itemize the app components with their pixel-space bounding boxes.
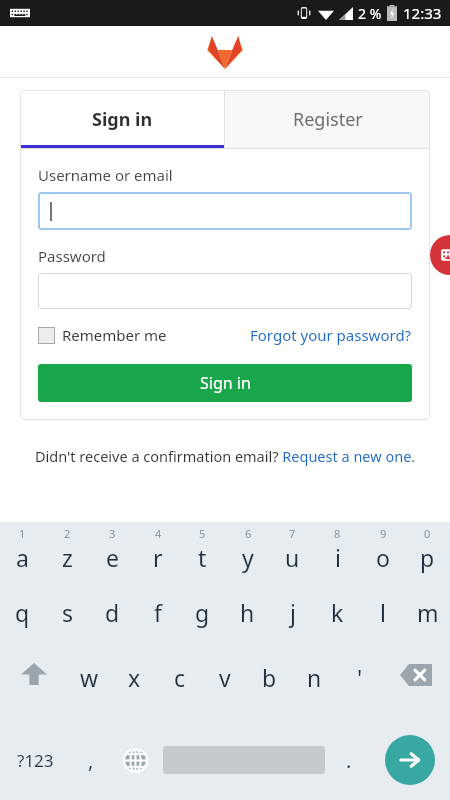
button[interactable]: n — [292, 655, 337, 720]
button[interactable]: 8 — [315, 522, 360, 590]
staticText: y — [242, 542, 254, 573]
button[interactable]: ' — [337, 655, 382, 720]
button[interactable]: m — [405, 590, 450, 655]
staticText: Username or email — [38, 165, 173, 185]
staticText: , — [88, 747, 94, 774]
staticText: 12:33 — [403, 3, 442, 23]
button[interactable]: g — [180, 590, 225, 655]
staticText: Sign in — [200, 372, 251, 394]
button[interactable]: 0 — [405, 522, 450, 590]
staticText: Remember me — [62, 325, 167, 345]
button[interactable]: k — [315, 590, 360, 655]
staticText: u — [285, 542, 300, 573]
staticText: j — [290, 597, 296, 628]
staticText: Didn't receive a confirmation email? Req… — [35, 446, 416, 466]
staticText: ' — [357, 662, 363, 693]
button[interactable]: b — [247, 655, 292, 720]
staticText: 8 — [334, 526, 341, 541]
staticText: l — [380, 597, 386, 628]
staticText: t — [198, 542, 207, 573]
button[interactable]: , — [70, 720, 112, 800]
staticText: o — [376, 542, 390, 573]
button[interactable]: v — [202, 655, 247, 720]
staticText: a — [16, 542, 29, 573]
button[interactable]: Space — [159, 720, 328, 800]
button[interactable]: 3 — [90, 522, 135, 590]
button[interactable]: x — [112, 655, 157, 720]
button[interactable]: Forgot your password? — [250, 325, 412, 345]
staticText: h — [240, 597, 255, 628]
staticText: Password — [38, 246, 106, 266]
staticText: z — [62, 542, 73, 573]
staticText: p — [420, 542, 435, 573]
button[interactable]: 9 — [360, 522, 405, 590]
button[interactable]: 5 — [180, 522, 225, 590]
button[interactable]: d — [90, 590, 135, 655]
button[interactable]: . — [328, 720, 370, 800]
button[interactable]: c — [157, 655, 202, 720]
button[interactable]: Change language — [112, 720, 159, 800]
staticText: k — [331, 597, 344, 628]
button[interactable]: f — [135, 590, 180, 655]
button[interactable]: s — [45, 590, 90, 655]
button[interactable]: Enter — [385, 735, 435, 785]
button[interactable]: h — [225, 590, 270, 655]
button[interactable]: 1 — [0, 522, 45, 590]
button[interactable]: w — [67, 655, 112, 720]
button[interactable]: j — [270, 590, 315, 655]
staticText: r — [153, 542, 163, 573]
staticText: 9 — [380, 526, 387, 541]
staticText: n — [307, 662, 322, 693]
staticText: x — [128, 662, 141, 693]
staticText: v — [219, 662, 231, 693]
staticText: 1 — [19, 526, 26, 541]
button[interactable]: Sign in — [38, 364, 412, 402]
staticText: . — [346, 747, 352, 774]
staticText: Forgot your password? — [250, 325, 412, 345]
staticText: 0 — [424, 526, 431, 541]
staticText: 4 — [155, 526, 162, 541]
button[interactable]: Keyboard switcher — [430, 235, 450, 275]
staticText: c — [174, 662, 186, 693]
button[interactable]: q — [0, 590, 45, 655]
button[interactable]: 2 — [45, 522, 90, 590]
button[interactable]: 4 — [135, 522, 180, 590]
staticText: 2 — [64, 526, 71, 541]
button[interactable]: ?123 — [0, 720, 70, 800]
staticText: q — [15, 597, 30, 628]
staticText: Register — [293, 107, 363, 132]
staticText: g — [195, 597, 210, 628]
button[interactable]: l — [360, 590, 405, 655]
button[interactable]: Backspace — [382, 655, 450, 720]
staticText: m — [417, 597, 439, 628]
staticText: f — [154, 597, 162, 628]
staticText: w — [80, 662, 99, 693]
staticText: e — [106, 542, 119, 573]
button[interactable]: Sign in — [20, 90, 224, 148]
button[interactable] — [38, 192, 412, 230]
staticText: 6 — [245, 526, 252, 541]
staticText: ?123 — [17, 749, 54, 772]
staticText: i — [335, 542, 341, 573]
staticText: 7 — [289, 526, 296, 541]
button[interactable] — [38, 273, 412, 309]
button[interactable]: Remember me — [38, 325, 167, 345]
staticText: 2 % — [358, 4, 382, 23]
button[interactable]: Register — [225, 90, 430, 148]
button[interactable]: 7 — [270, 522, 315, 590]
staticText: 5 — [199, 526, 206, 541]
staticText: s — [62, 597, 74, 628]
staticText: d — [105, 597, 120, 628]
staticText: 3 — [109, 526, 116, 541]
button[interactable]: 6 — [225, 522, 270, 590]
staticText: b — [262, 662, 277, 693]
button[interactable]: Shift — [0, 655, 67, 720]
staticText: Sign in — [92, 107, 153, 132]
